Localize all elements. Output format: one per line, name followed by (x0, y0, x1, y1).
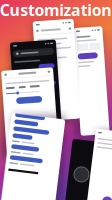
staticText: Customization (4, 0, 108, 19)
